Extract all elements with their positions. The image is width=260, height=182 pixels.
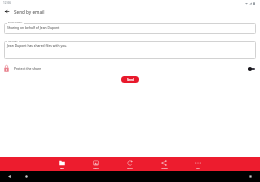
staticText: Email subject [8,21,23,24]
staticText: Recent [127,167,133,169]
button[interactable]: Jean Dupont has shared files with you. [4,41,256,59]
staticText: Jean Dupont has shared files with you. [7,43,68,47]
staticText: Protect the share [14,66,42,70]
staticText: Send [127,78,134,82]
button[interactable]: Recents [248,174,253,179]
button[interactable]: Sharing on behalf of Jean Dupont [4,23,256,34]
staticText: Sharing [161,167,168,169]
staticText: Files [60,167,64,169]
staticText: Plus [196,167,200,169]
button[interactable]: Protect the share toggle [246,63,256,74]
button[interactable]: Back [2,6,12,16]
staticText: Gallery [93,167,99,169]
button[interactable]: Sharing [147,157,181,171]
button[interactable]: Send [121,76,139,83]
button[interactable]: Back [7,174,12,179]
button[interactable]: Protect the share [4,62,204,74]
staticText: 12:56 [3,1,12,5]
staticText: Sharing on behalf of Jean Dupont [7,25,60,29]
button[interactable]: Recent [113,157,147,171]
button[interactable]: Plus [181,157,215,171]
button[interactable]: Gallery [79,157,113,171]
staticText: Send by email [14,9,45,15]
button[interactable]: Files [45,157,79,171]
staticText: Message [8,40,18,43]
button[interactable]: Home [24,174,29,179]
